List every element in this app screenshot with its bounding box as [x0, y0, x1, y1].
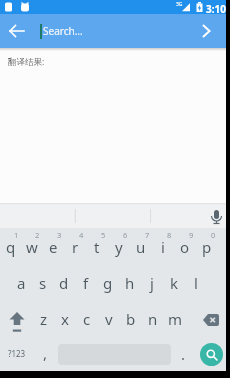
button[interactable]: d	[53, 264, 75, 300]
staticText: o	[180, 237, 190, 257]
staticText: a	[17, 273, 26, 293]
button[interactable]: z	[33, 300, 54, 335]
staticText: 2	[35, 230, 40, 240]
staticText: s	[39, 273, 47, 293]
staticText: u	[136, 237, 146, 257]
staticText: Search...	[43, 24, 83, 38]
staticText: q	[6, 237, 16, 257]
staticText: t	[94, 237, 100, 257]
button[interactable]: x	[54, 300, 76, 335]
staticText: 0	[211, 230, 216, 240]
button[interactable]: b	[120, 300, 142, 335]
button[interactable]: p	[196, 228, 218, 264]
staticText: j	[150, 273, 154, 293]
staticText: z	[40, 309, 48, 329]
button[interactable]: g	[97, 264, 119, 300]
staticText: b	[126, 309, 136, 329]
button[interactable]: u	[130, 228, 152, 264]
button[interactable]: ?123	[0, 335, 34, 371]
button[interactable]	[0, 14, 34, 48]
staticText: p	[202, 237, 212, 257]
staticText: 3	[57, 230, 62, 240]
staticText: 9	[189, 230, 194, 240]
staticText: m	[168, 309, 183, 329]
staticText: 4	[79, 230, 84, 240]
button[interactable]: l	[185, 264, 207, 300]
button[interactable]: i	[152, 228, 174, 264]
button[interactable]: o	[174, 228, 196, 264]
button[interactable]: h	[119, 264, 141, 300]
staticText: .	[181, 344, 186, 364]
button[interactable]: s	[32, 264, 53, 300]
button[interactable]	[200, 343, 223, 366]
staticText: d	[59, 273, 69, 293]
button[interactable]: k	[163, 264, 185, 300]
staticText: n	[148, 309, 158, 329]
button[interactable]: r	[64, 228, 86, 264]
staticText: 6	[123, 230, 128, 240]
staticText: 5	[101, 230, 106, 240]
button[interactable]: Search...	[40, 14, 83, 48]
button[interactable]: ,	[34, 335, 57, 371]
button[interactable]: y	[108, 228, 130, 264]
staticText: w	[26, 237, 38, 257]
staticText: l	[194, 273, 198, 293]
button[interactable]: v	[98, 300, 120, 335]
staticText: y	[115, 237, 123, 257]
staticText: g	[103, 273, 113, 293]
button[interactable]: e	[42, 228, 64, 264]
button[interactable]: f	[75, 264, 97, 300]
staticText: r	[72, 237, 79, 257]
button[interactable]: j	[141, 264, 163, 300]
button[interactable]: w	[21, 228, 42, 264]
staticText: ?123	[8, 348, 26, 359]
staticText: h	[125, 273, 135, 293]
button[interactable]: c	[76, 300, 98, 335]
staticText: 3G	[176, 1, 183, 8]
staticText: v	[105, 309, 113, 329]
button[interactable]	[192, 14, 226, 48]
staticText: 翻译结果:	[8, 56, 45, 68]
staticText: e	[49, 237, 58, 257]
staticText: 8	[167, 230, 172, 240]
button[interactable]: m	[164, 300, 186, 335]
staticText: f	[83, 273, 89, 293]
button[interactable]	[0, 300, 33, 335]
button[interactable]: .	[172, 335, 195, 371]
staticText: x	[61, 309, 69, 329]
staticText: 1	[14, 230, 19, 240]
staticText: 3:10	[206, 2, 226, 16]
button[interactable]: n	[142, 300, 164, 335]
staticText: i	[161, 237, 165, 257]
button[interactable]: q	[0, 228, 21, 264]
button[interactable]: t	[86, 228, 108, 264]
staticText: k	[170, 273, 179, 293]
staticText: ,	[43, 343, 48, 363]
button[interactable]	[186, 300, 226, 335]
button[interactable]: a	[11, 264, 32, 300]
staticText: c	[83, 309, 91, 329]
staticText: 7	[145, 230, 150, 240]
